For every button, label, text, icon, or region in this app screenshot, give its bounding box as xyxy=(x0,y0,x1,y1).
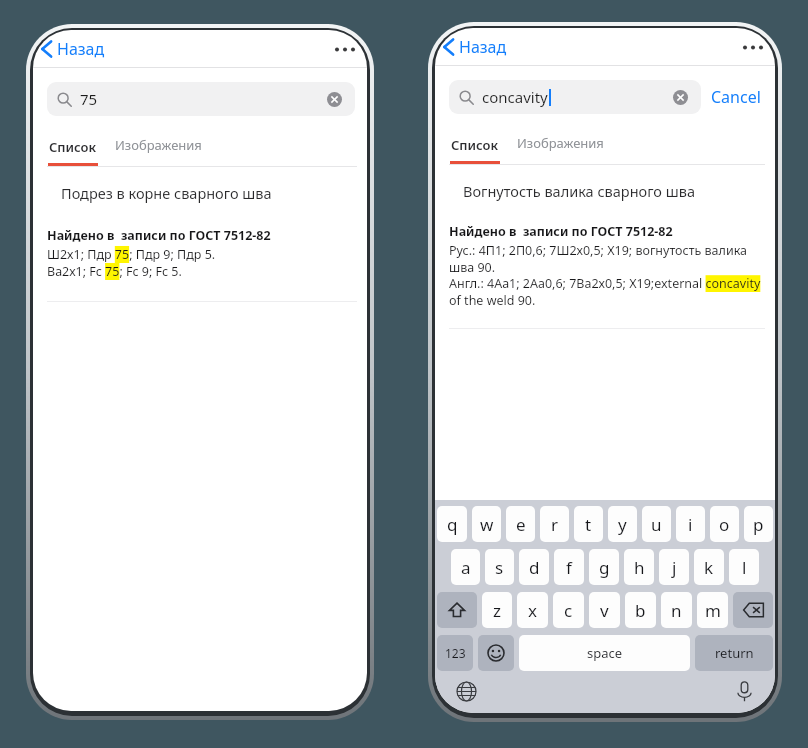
staticText: q xyxy=(447,513,458,536)
staticText: j xyxy=(672,556,677,579)
button[interactable]: q xyxy=(437,506,467,542)
button[interactable]: y xyxy=(608,506,637,542)
staticText: 75 xyxy=(80,89,98,109)
staticText: l xyxy=(742,556,747,579)
staticText: Список xyxy=(451,136,499,154)
button[interactable]: t xyxy=(574,506,603,542)
staticText: Англ.: 4Аа1; 2Аа0,6; 7Ва2х0,5; Х19;exter… xyxy=(449,275,765,308)
staticText: k xyxy=(704,556,714,579)
staticText: y xyxy=(618,513,627,536)
button[interactable]: o xyxy=(710,506,739,542)
staticText: x xyxy=(528,599,537,622)
button[interactable]: v xyxy=(589,592,620,628)
staticText: p xyxy=(753,513,764,536)
button[interactable]: r xyxy=(540,506,569,542)
staticText: Ва2х1; Fc 75; Fc 9; Fc 5. xyxy=(47,263,182,280)
staticText: o xyxy=(719,513,730,536)
button[interactable]: n xyxy=(661,592,692,628)
button[interactable]: z xyxy=(482,592,512,628)
staticText: c xyxy=(564,599,573,622)
button[interactable]: Backspace xyxy=(733,592,773,628)
staticText: Изображения xyxy=(517,134,604,152)
staticText: Найдено в записи по ГОСТ 7512-82 xyxy=(449,223,673,240)
button[interactable]: Назад xyxy=(33,34,115,64)
button[interactable]: m xyxy=(697,592,728,628)
staticText: e xyxy=(516,513,526,536)
staticText: i xyxy=(688,513,693,536)
button[interactable]: u xyxy=(642,506,671,542)
button[interactable]: f xyxy=(554,549,584,585)
button[interactable]: Shift xyxy=(437,592,477,628)
staticText: h xyxy=(634,556,645,579)
button[interactable]: s xyxy=(485,549,514,585)
button[interactable]: Изображения xyxy=(515,131,606,164)
button[interactable]: 75 xyxy=(47,82,355,116)
button[interactable]: g xyxy=(589,549,619,585)
button[interactable]: p xyxy=(744,506,773,542)
button[interactable]: 123 xyxy=(437,635,473,671)
button[interactable]: c xyxy=(553,592,584,628)
button[interactable]: j xyxy=(659,549,689,585)
staticText: Подрез в корне сварного шва xyxy=(61,183,272,203)
staticText: Назад xyxy=(57,38,105,60)
button[interactable]: Список xyxy=(47,135,99,166)
button[interactable]: l xyxy=(729,549,759,585)
staticText: space xyxy=(587,644,623,662)
button[interactable]: Change keyboard xyxy=(451,676,481,706)
button[interactable]: Dictation xyxy=(729,676,759,706)
staticText: Вогнутость валика сварного шва xyxy=(463,181,695,201)
button[interactable]: Список xyxy=(449,133,501,164)
staticText: Рус.: 4П1; 2П0,6; 7Ш2х0,5; Х19; вогнутос… xyxy=(449,242,765,275)
button[interactable]: Clear search xyxy=(669,86,691,108)
staticText: d xyxy=(529,556,540,579)
staticText: Назад xyxy=(459,36,507,58)
button[interactable]: Изображения xyxy=(113,133,204,166)
staticText: a xyxy=(461,556,471,579)
button[interactable]: w xyxy=(472,506,501,542)
button[interactable]: e xyxy=(506,506,535,542)
staticText: r xyxy=(551,513,559,536)
button[interactable]: i xyxy=(676,506,705,542)
staticText: Изображения xyxy=(115,136,202,154)
button[interactable]: space xyxy=(519,635,690,671)
button[interactable]: Emoji xyxy=(478,635,514,671)
button[interactable]: x xyxy=(517,592,548,628)
button[interactable]: d xyxy=(519,549,549,585)
staticText: 123 xyxy=(445,645,466,661)
staticText: Найдено в записи по ГОСТ 7512-82 xyxy=(47,227,271,244)
button[interactable]: Clear search xyxy=(323,88,345,110)
staticText: Cancel xyxy=(711,86,761,108)
button[interactable]: a xyxy=(451,549,480,585)
staticText: f xyxy=(566,556,572,579)
staticText: Список xyxy=(49,138,97,156)
staticText: n xyxy=(671,599,682,622)
button[interactable]: b xyxy=(625,592,656,628)
button[interactable]: concavity xyxy=(449,80,701,114)
button[interactable]: return xyxy=(695,635,773,671)
staticText: w xyxy=(480,513,494,536)
staticText: Ш2х1; Пдр 75; Пдр 9; Пдр 5. xyxy=(47,246,216,263)
staticText: u xyxy=(651,513,662,536)
button[interactable]: Назад xyxy=(435,32,517,62)
staticText: return xyxy=(715,644,754,662)
button[interactable]: h xyxy=(624,549,654,585)
button[interactable]: Cancel xyxy=(701,80,763,114)
staticText: concavity xyxy=(482,87,548,107)
staticText: v xyxy=(600,599,609,622)
staticText: t xyxy=(585,513,592,536)
staticText: m xyxy=(705,599,721,622)
button[interactable]: k xyxy=(694,549,724,585)
button[interactable]: More options xyxy=(323,37,367,62)
staticText: s xyxy=(495,556,504,579)
button[interactable]: More options xyxy=(731,35,775,60)
staticText: z xyxy=(493,599,501,622)
staticText: b xyxy=(635,599,646,622)
staticText: g xyxy=(599,556,610,579)
